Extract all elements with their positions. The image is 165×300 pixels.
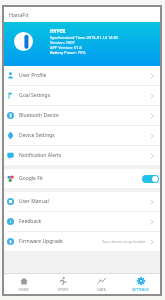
staticText: HOME <box>18 287 29 292</box>
staticText: Synchronized Time: 2015-01-14 14:50 <box>50 35 118 40</box>
staticText: Notification Alerts <box>19 152 62 159</box>
staticText: Device Settings <box>19 132 55 139</box>
staticText: Version: 1007 <box>50 40 75 45</box>
staticText: HanaFit <box>9 11 29 18</box>
button[interactable]: Goal Settings <box>4 86 160 105</box>
staticText: DATA <box>97 287 106 292</box>
button[interactable]: Notification Alerts <box>4 146 160 165</box>
button[interactable]: SPORT <box>43 274 82 294</box>
staticText: Your device is up to date <box>102 239 146 244</box>
button[interactable]: HOME <box>4 274 43 294</box>
staticText: Bluetooth Device <box>19 112 59 119</box>
staticText: Firmware Upgrade <box>19 238 63 245</box>
staticText: SETTINGS <box>132 287 149 292</box>
staticText: Goal Settings <box>19 92 51 99</box>
button[interactable]: DATA <box>82 274 121 294</box>
staticText: SPORT <box>57 287 69 292</box>
staticText: Battery Power: 75% <box>50 50 86 55</box>
staticText: User Manual <box>19 198 49 205</box>
staticText: APP Version: V1.5 <box>50 45 82 50</box>
button[interactable]: Device Settings <box>4 126 160 145</box>
staticText: User Profile <box>19 72 47 79</box>
button[interactable]: Firmware Upgrade <box>4 232 160 251</box>
button[interactable]: Feedback <box>4 212 160 231</box>
button[interactable]: User Manual <box>4 192 160 211</box>
button[interactable]: Bluetooth Device <box>4 106 160 125</box>
staticText: HYPER <box>50 28 66 35</box>
staticText: Google Fit <box>19 175 43 182</box>
staticText: Feedback <box>19 218 42 225</box>
button[interactable]: User Profile <box>4 66 160 85</box>
button[interactable]: Google Fit <box>4 169 160 188</box>
button[interactable]: SETTINGS <box>121 274 160 294</box>
